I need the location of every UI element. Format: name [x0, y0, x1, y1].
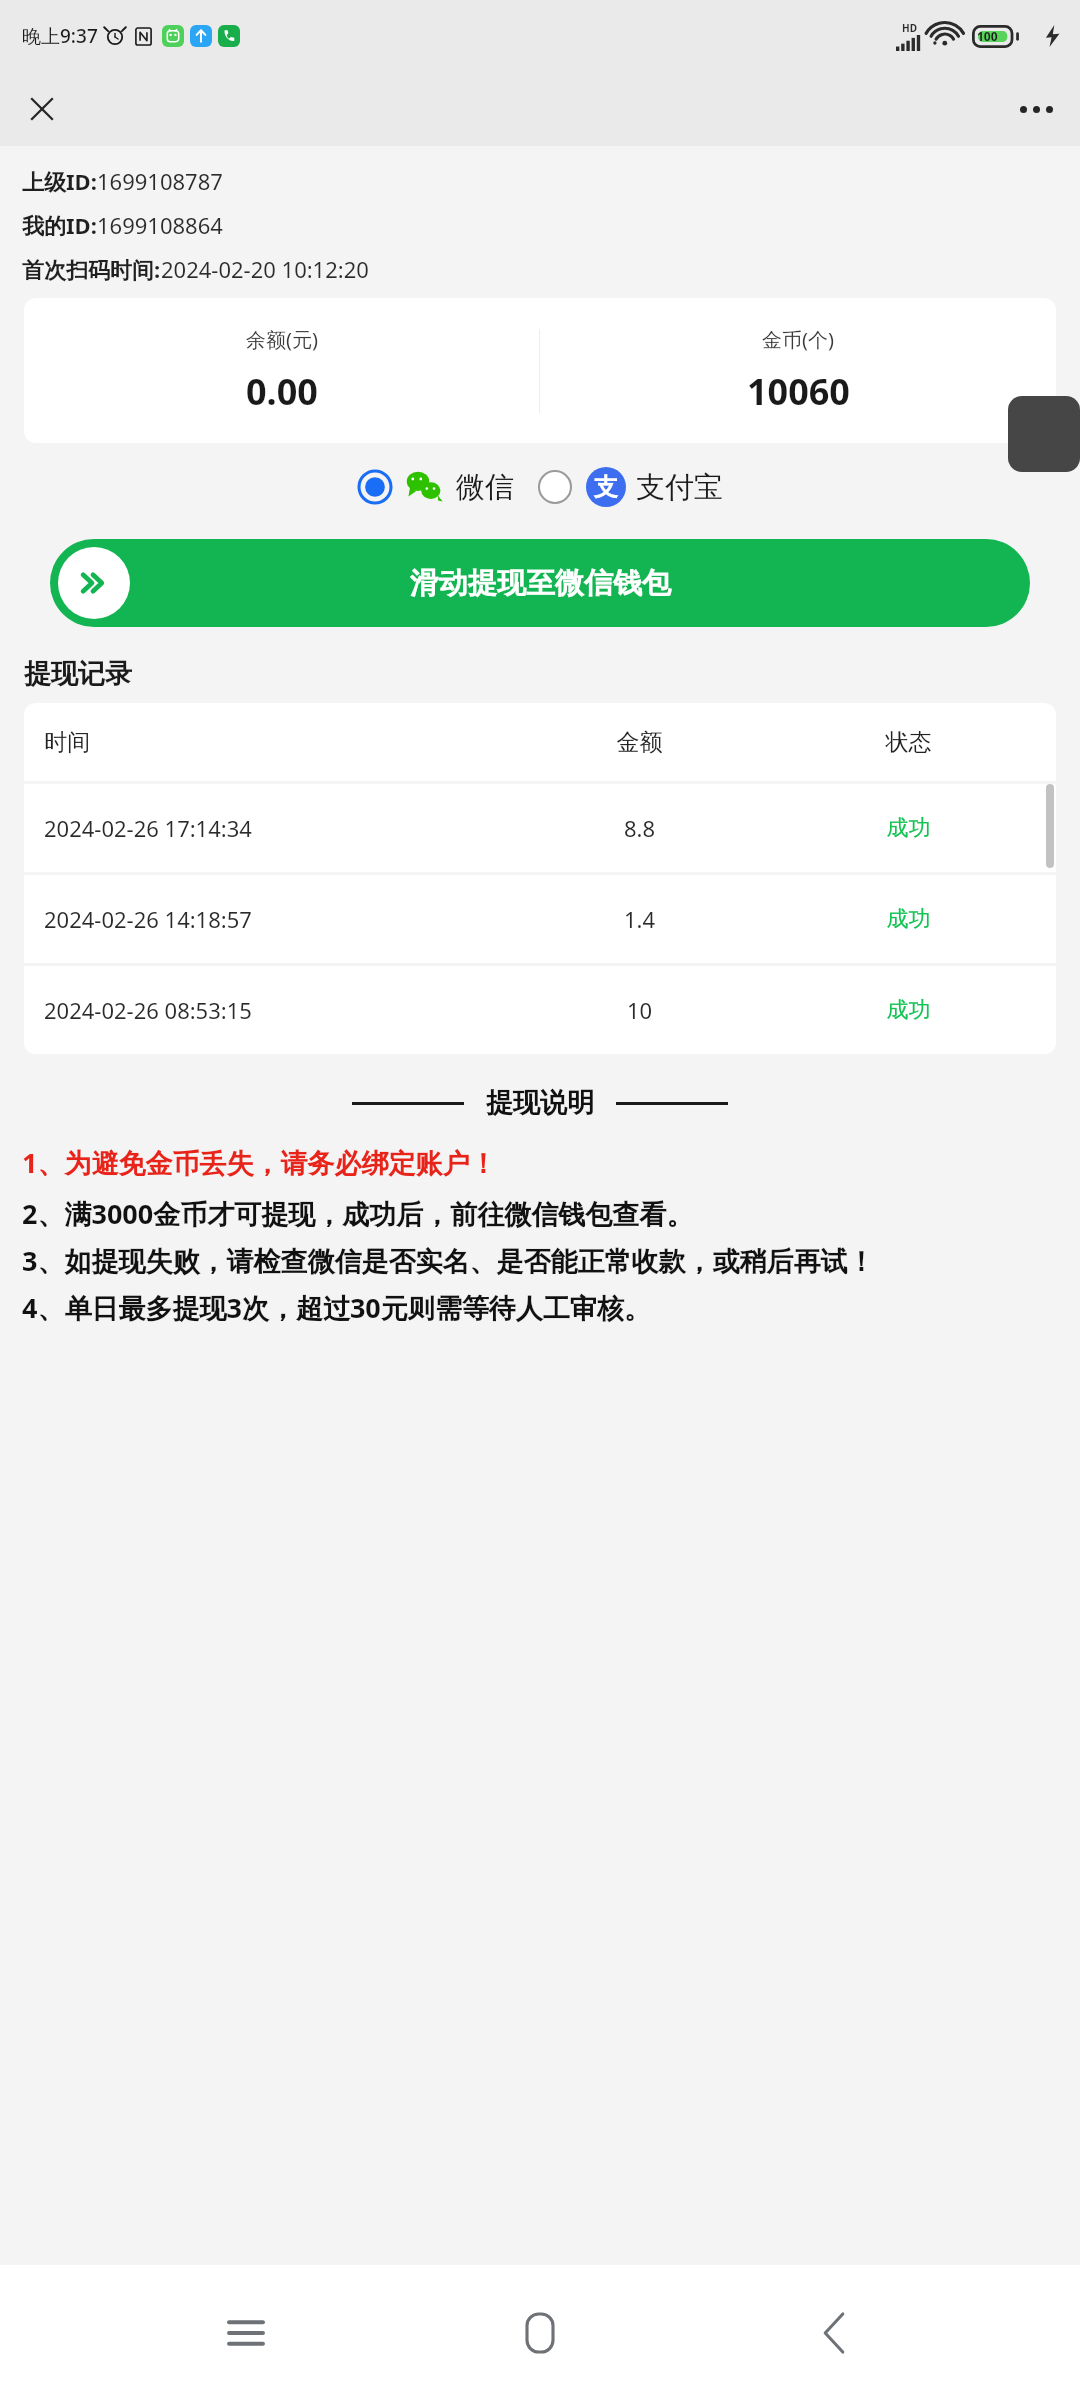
staticText: 100: [977, 28, 998, 44]
staticText: 10: [498, 995, 781, 1025]
button[interactable]: Recent apps: [198, 2285, 294, 2381]
button[interactable]: 支: [534, 461, 727, 513]
staticText: HD: [902, 21, 917, 35]
staticText: 微信: [456, 469, 514, 506]
staticText: 成功: [781, 814, 1036, 842]
staticText: 2、满3000金币才可提现，成功后，前往微信钱包查看。: [22, 1195, 1058, 1232]
button[interactable]: 微信: [354, 461, 518, 513]
staticText: 滑动提现至微信钱包: [410, 565, 671, 602]
staticText: 2024-02-20 10:12:20: [161, 254, 369, 284]
button[interactable]: Back: [786, 2285, 882, 2381]
staticText: 1、为避免金币丢失，请务必绑定账户！: [22, 1144, 1058, 1181]
button[interactable]: Home: [492, 2285, 588, 2381]
staticText: 提现说明: [486, 1086, 594, 1120]
button[interactable]: 2024-02-26 08:53:15: [24, 966, 1056, 1054]
button[interactable]: 2024-02-26 14:18:57: [24, 875, 1056, 963]
staticText: 1699108787: [97, 166, 223, 196]
staticText: 余额(元): [246, 326, 318, 353]
staticText: 2024-02-26 14:18:57: [44, 904, 498, 934]
button[interactable]: Close: [14, 81, 70, 137]
staticText: 成功: [781, 996, 1036, 1024]
staticText: 时间: [44, 728, 498, 757]
staticText: 晚上9:37: [22, 23, 98, 49]
staticText: 4、单日最多提现3次，超过30元则需等待人工审核。: [22, 1289, 1058, 1326]
staticText: 首次扫码时间:: [22, 254, 161, 284]
staticText: 1699108864: [97, 210, 223, 240]
staticText: 3、如提现失败，请检查微信是否实名、是否能正常收款，或稍后再试！: [22, 1242, 1058, 1279]
staticText: 我的ID:: [22, 210, 97, 240]
button[interactable]: 滑动提现至微信钱包: [50, 539, 1030, 627]
staticText: 10060: [747, 367, 850, 416]
staticText: 0.00: [246, 367, 318, 416]
staticText: 状态: [781, 728, 1036, 757]
staticText: 金币(个): [762, 326, 834, 353]
staticText: 支: [594, 472, 618, 502]
staticText: 支付宝: [636, 469, 723, 506]
button[interactable]: Floating widget: [1008, 396, 1080, 472]
staticText: 上级ID:: [22, 166, 97, 196]
staticText: 金额: [498, 728, 781, 757]
staticText: 提现记录: [24, 657, 132, 691]
staticText: 成功: [781, 905, 1036, 933]
staticText: 2024-02-26 17:14:34: [44, 813, 498, 843]
staticText: 1.4: [498, 904, 781, 934]
button[interactable]: 2024-02-26 17:14:34: [24, 784, 1056, 872]
staticText: 2024-02-26 08:53:15: [44, 995, 498, 1025]
staticText: 8.8: [498, 813, 781, 843]
button[interactable]: More options: [1008, 81, 1064, 137]
